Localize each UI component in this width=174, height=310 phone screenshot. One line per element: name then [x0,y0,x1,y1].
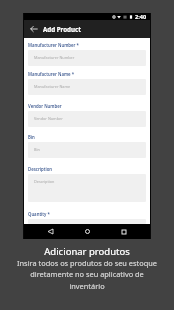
staticText: Adicionar produtos [44,245,130,258]
staticText: Vendor Number [28,103,62,109]
staticText: Description [28,166,53,172]
button[interactable]: Description [28,174,146,202]
button[interactable]: Vendor Number [28,111,146,127]
staticText: Manufacturer Name * [28,71,75,77]
staticText: Bin [28,134,35,140]
staticText: Manufacturer Number * [28,42,79,48]
button[interactable]: Home [81,225,94,238]
button[interactable]: Recent apps [117,225,130,238]
staticText: Description [34,179,55,184]
staticText: 2:40 [135,13,147,20]
staticText: Quantity * [28,211,50,217]
button[interactable]: Manufacturer Name [28,79,146,95]
button[interactable]: Back [44,225,57,238]
staticText: Manufacturer Name [34,84,71,89]
button[interactable]: Navigate up [28,23,40,35]
staticText: Insira todos os produtos do seu estoque … [14,258,160,291]
staticText: Manufacturer Number [34,55,75,60]
staticText: Add Product [43,25,81,33]
staticText: Vendor Number [34,116,63,121]
staticText: Bin [34,147,40,152]
button[interactable]: Manufacturer Number [28,50,146,66]
